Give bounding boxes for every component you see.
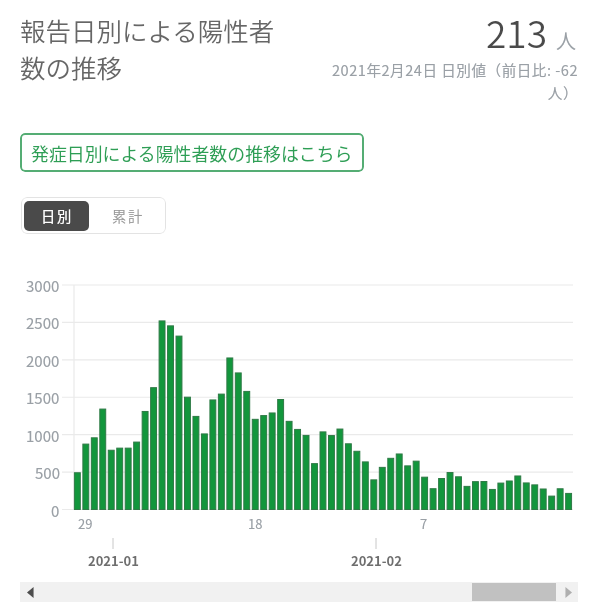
- staticText: 7: [420, 514, 428, 533]
- button[interactable]: Scroll left: [20, 582, 40, 602]
- staticText: 2000: [26, 350, 60, 372]
- staticText: 18: [248, 514, 263, 533]
- button[interactable]: Scroll right: [558, 582, 578, 602]
- button[interactable]: 累計: [89, 201, 167, 231]
- staticText: 累計: [112, 205, 144, 226]
- staticText: 2500: [26, 312, 60, 334]
- staticText: 2021-01: [88, 551, 139, 570]
- staticText: 人: [556, 26, 576, 55]
- staticText: 500: [35, 462, 60, 484]
- staticText: 3000: [26, 275, 60, 297]
- button[interactable]: 日別: [24, 201, 89, 231]
- staticText: 2021-02: [351, 551, 402, 570]
- button[interactable]: 発症日別による陽性者数の推移はこちら: [20, 133, 364, 172]
- staticText: 213: [486, 5, 547, 59]
- staticText: 1000: [26, 425, 60, 447]
- staticText: 1500: [26, 387, 60, 409]
- staticText: 29: [78, 514, 93, 533]
- staticText: 日別: [41, 205, 73, 226]
- staticText: 0: [51, 500, 60, 522]
- staticText: 発症日別による陽性者数の推移はこちら: [31, 140, 353, 166]
- staticText: 報告日別による陽性者 数の推移: [20, 11, 275, 86]
- staticText: 2021年2月24日 日別値（前日比: -62人）: [318, 59, 578, 104]
